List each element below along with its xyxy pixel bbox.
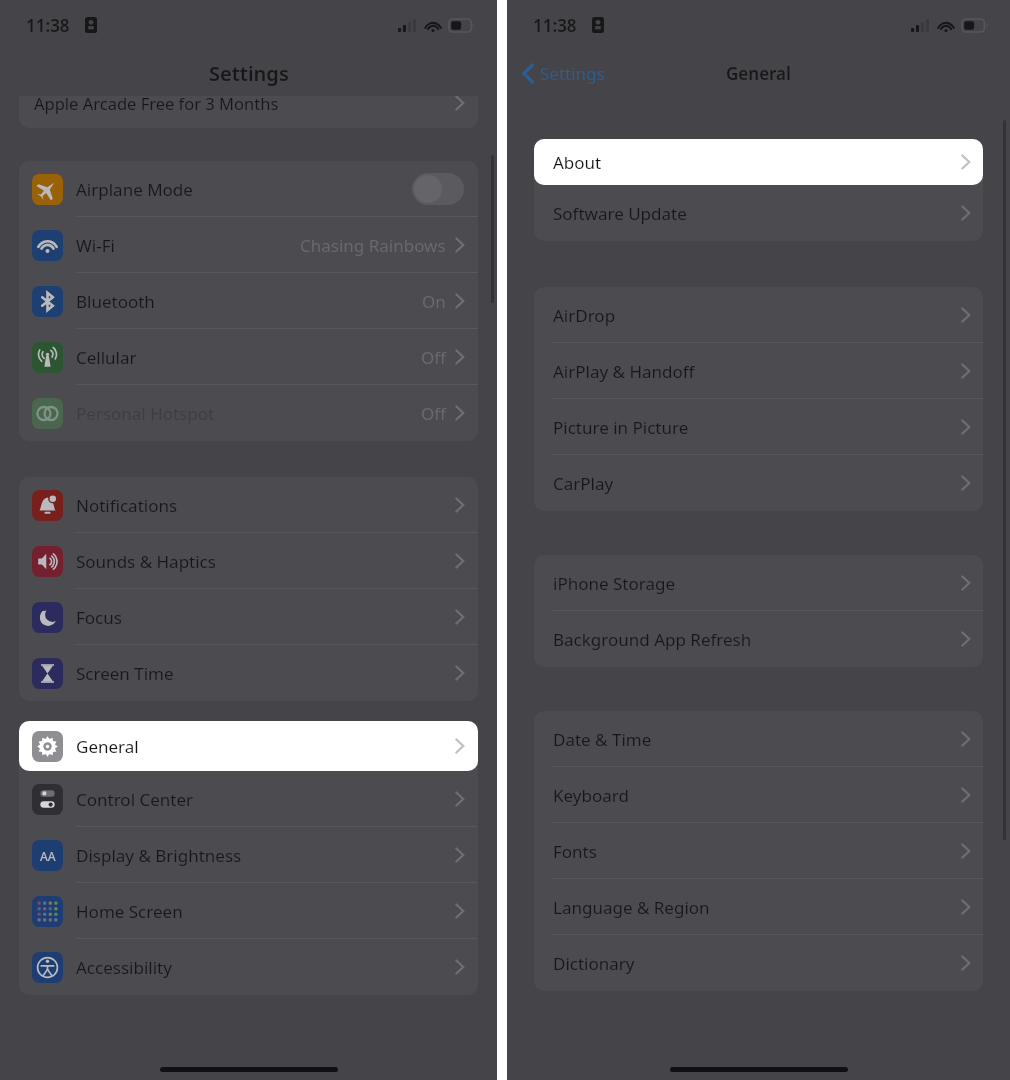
staticText: Chasing Rainbows [300, 234, 446, 257]
staticText: iPhone Storage [553, 572, 675, 595]
staticText: AA [40, 848, 56, 864]
button[interactable]: Fonts [534, 823, 983, 879]
staticText: Off [421, 346, 446, 369]
button[interactable]: Screen Time [19, 645, 478, 701]
button[interactable]: Focus [19, 589, 478, 645]
staticText: Language & Region [553, 896, 710, 919]
button[interactable]: AirPlay & Handoff [534, 343, 983, 399]
staticText: Home Screen [76, 900, 183, 923]
button[interactable]: Software Update [534, 185, 983, 241]
staticText: Bluetooth [76, 290, 155, 313]
staticText: Focus [76, 606, 122, 629]
staticText: General [76, 735, 139, 758]
button[interactable]: Cellular [19, 329, 478, 385]
staticText: Personal Hotspot [76, 402, 215, 425]
staticText: Keyboard [553, 784, 629, 807]
staticText: Screen Time [76, 662, 174, 685]
button[interactable]: CarPlay [534, 455, 983, 511]
staticText: 11:38 [26, 14, 70, 37]
button[interactable]: General [19, 721, 478, 771]
staticText: Date & Time [553, 728, 652, 751]
button[interactable]: AirDrop [534, 287, 983, 343]
staticText: Display & Brightness [76, 844, 242, 867]
staticText: Apple Arcade Free for 3 Months [34, 96, 279, 114]
staticText: Off [421, 402, 446, 425]
button[interactable]: About [534, 139, 983, 185]
button[interactable]: Dictionary [534, 935, 983, 991]
button[interactable]: Date & Time [534, 711, 983, 767]
button[interactable]: Settings [517, 56, 611, 91]
button[interactable]: Keyboard [534, 767, 983, 823]
staticText: AirPlay & Handoff [553, 360, 695, 383]
button[interactable]: Apple Arcade Free for 3 Months [19, 96, 478, 128]
staticText: About [553, 151, 602, 174]
staticText: Wi-Fi [76, 234, 115, 257]
staticText: Dictionary [553, 952, 635, 975]
staticText: AirDrop [553, 304, 616, 327]
staticText: Accessibility [76, 956, 172, 979]
button[interactable]: Picture in Picture [534, 399, 983, 455]
button[interactable]: Accessibility [19, 939, 478, 995]
button[interactable]: Home Screen [19, 883, 478, 939]
staticText: Control Center [76, 788, 194, 811]
staticText: Sounds & Haptics [76, 550, 216, 573]
staticText: Settings [540, 62, 605, 85]
staticText: 11:38 [533, 14, 577, 37]
button[interactable]: Control Center [19, 771, 478, 827]
staticText: On [422, 290, 446, 313]
staticText: General [726, 62, 791, 85]
staticText: Airplane Mode [76, 178, 193, 201]
button[interactable]: Airplane Mode toggle [412, 173, 464, 205]
button[interactable]: Background App Refresh [534, 611, 983, 667]
button[interactable]: Notifications [19, 477, 478, 533]
button[interactable]: Sounds & Haptics [19, 533, 478, 589]
button[interactable]: iPhone Storage [534, 555, 983, 611]
button[interactable]: Bluetooth [19, 273, 478, 329]
button[interactable]: Personal Hotspot [19, 385, 478, 441]
staticText: CarPlay [553, 472, 614, 495]
button[interactable]: Language & Region [534, 879, 983, 935]
staticText: Cellular [76, 346, 137, 369]
staticText: Software Update [553, 202, 687, 225]
staticText: Settings [209, 60, 289, 87]
staticText: Background App Refresh [553, 628, 752, 651]
staticText: Picture in Picture [553, 416, 689, 439]
button[interactable]: Airplane Mode [19, 161, 478, 217]
button[interactable]: AA [19, 827, 478, 883]
staticText: Notifications [76, 494, 178, 517]
staticText: Fonts [553, 840, 597, 863]
button[interactable]: Wi-Fi [19, 217, 478, 273]
